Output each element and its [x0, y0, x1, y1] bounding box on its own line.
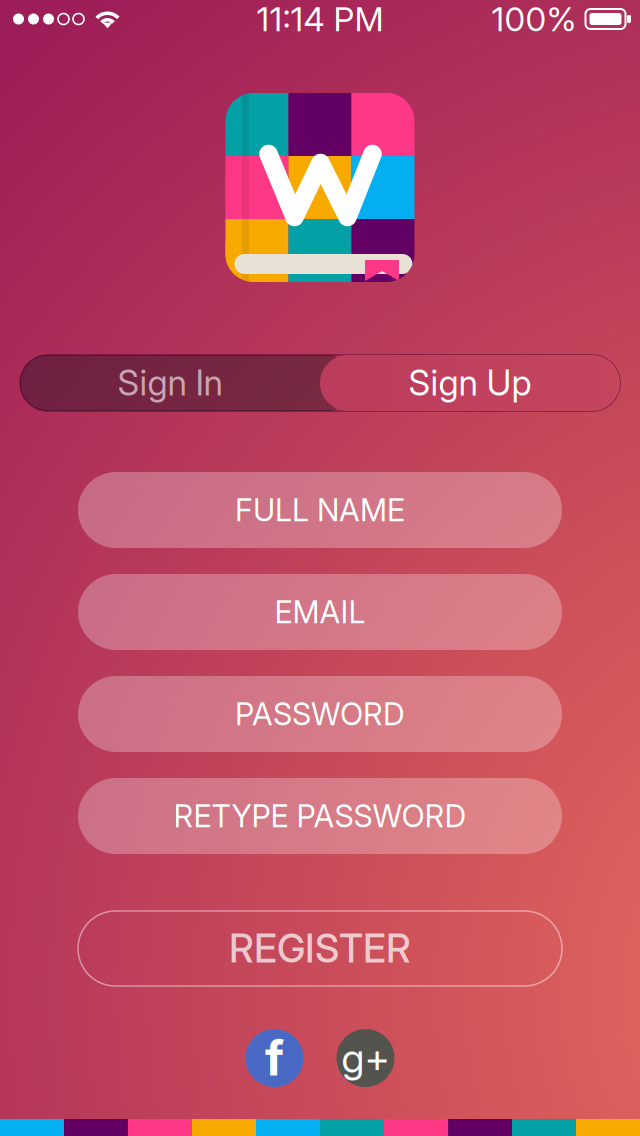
button[interactable]: PASSWORD [78, 676, 562, 752]
button[interactable]: Sign up with Facebook [245, 1029, 303, 1087]
staticText: Sign Up [408, 362, 531, 404]
staticText: FULL NAME [235, 491, 405, 528]
staticText: Sign In [117, 362, 222, 404]
button[interactable]: Sign up with Google Plus [336, 1029, 394, 1087]
button[interactable]: Sign Up [320, 355, 620, 411]
staticText: 11:14 PM [256, 0, 383, 39]
staticText: PASSWORD [235, 695, 405, 732]
staticText: f [265, 1029, 284, 1087]
staticText: REGISTER [229, 925, 411, 972]
button[interactable]: EMAIL [78, 574, 562, 650]
staticText: EMAIL [274, 593, 365, 630]
staticText: 100% [491, 0, 576, 39]
button[interactable]: FULL NAME [78, 472, 562, 548]
button[interactable]: REGISTER [78, 911, 562, 986]
button[interactable]: RETYPE PASSWORD [78, 778, 562, 854]
button[interactable]: Sign In [20, 355, 320, 411]
staticText: g+ [341, 1034, 389, 1082]
staticText: RETYPE PASSWORD [173, 797, 466, 834]
